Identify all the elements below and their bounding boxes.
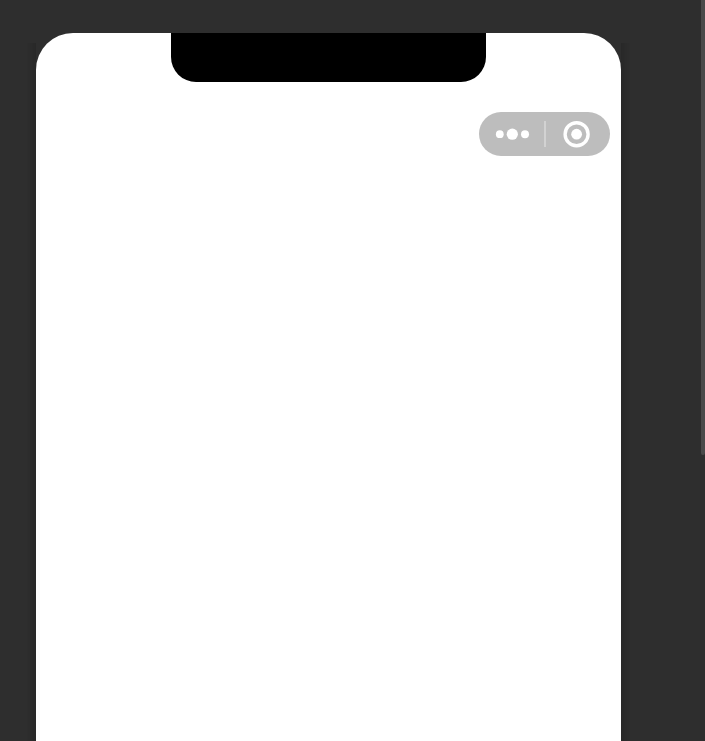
button[interactable]: Record (546, 112, 610, 156)
button[interactable]: More options (479, 112, 543, 156)
